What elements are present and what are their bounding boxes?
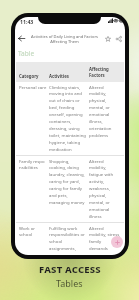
staticText: Category bbox=[19, 73, 47, 79]
staticText: Activities of Daily Living and Factors A… bbox=[27, 34, 102, 44]
staticText: Climbing stairs, moving into and out of … bbox=[49, 84, 87, 153]
staticText: Altered mobility, physical, mental, or e… bbox=[89, 84, 121, 139]
staticText: Altered mobility, stress, family demands bbox=[89, 225, 121, 252]
button[interactable]: Add bbox=[111, 236, 123, 248]
staticText: Personal care bbox=[19, 84, 47, 90]
button[interactable]: Favorite bbox=[102, 33, 113, 44]
staticText: Work or school bbox=[19, 225, 47, 238]
staticText: Tables bbox=[56, 277, 83, 289]
staticText: Fulfilling work responsibilities or scho… bbox=[49, 225, 87, 253]
staticText: Activities bbox=[49, 73, 87, 79]
staticText: Table bbox=[18, 49, 35, 58]
staticText: FAST ACCESS bbox=[39, 263, 101, 276]
staticText: Affecting Factors bbox=[89, 66, 121, 79]
button[interactable]: Back bbox=[16, 33, 27, 44]
staticText: Family responsibilities bbox=[19, 158, 47, 171]
staticText: 11:43 bbox=[20, 18, 34, 25]
staticText: Altered mobility, fatigue with activity,… bbox=[89, 158, 121, 220]
button[interactable]: Share bbox=[113, 33, 124, 44]
staticText: Shopping, cooking, doing laundry, cleani… bbox=[49, 158, 87, 206]
